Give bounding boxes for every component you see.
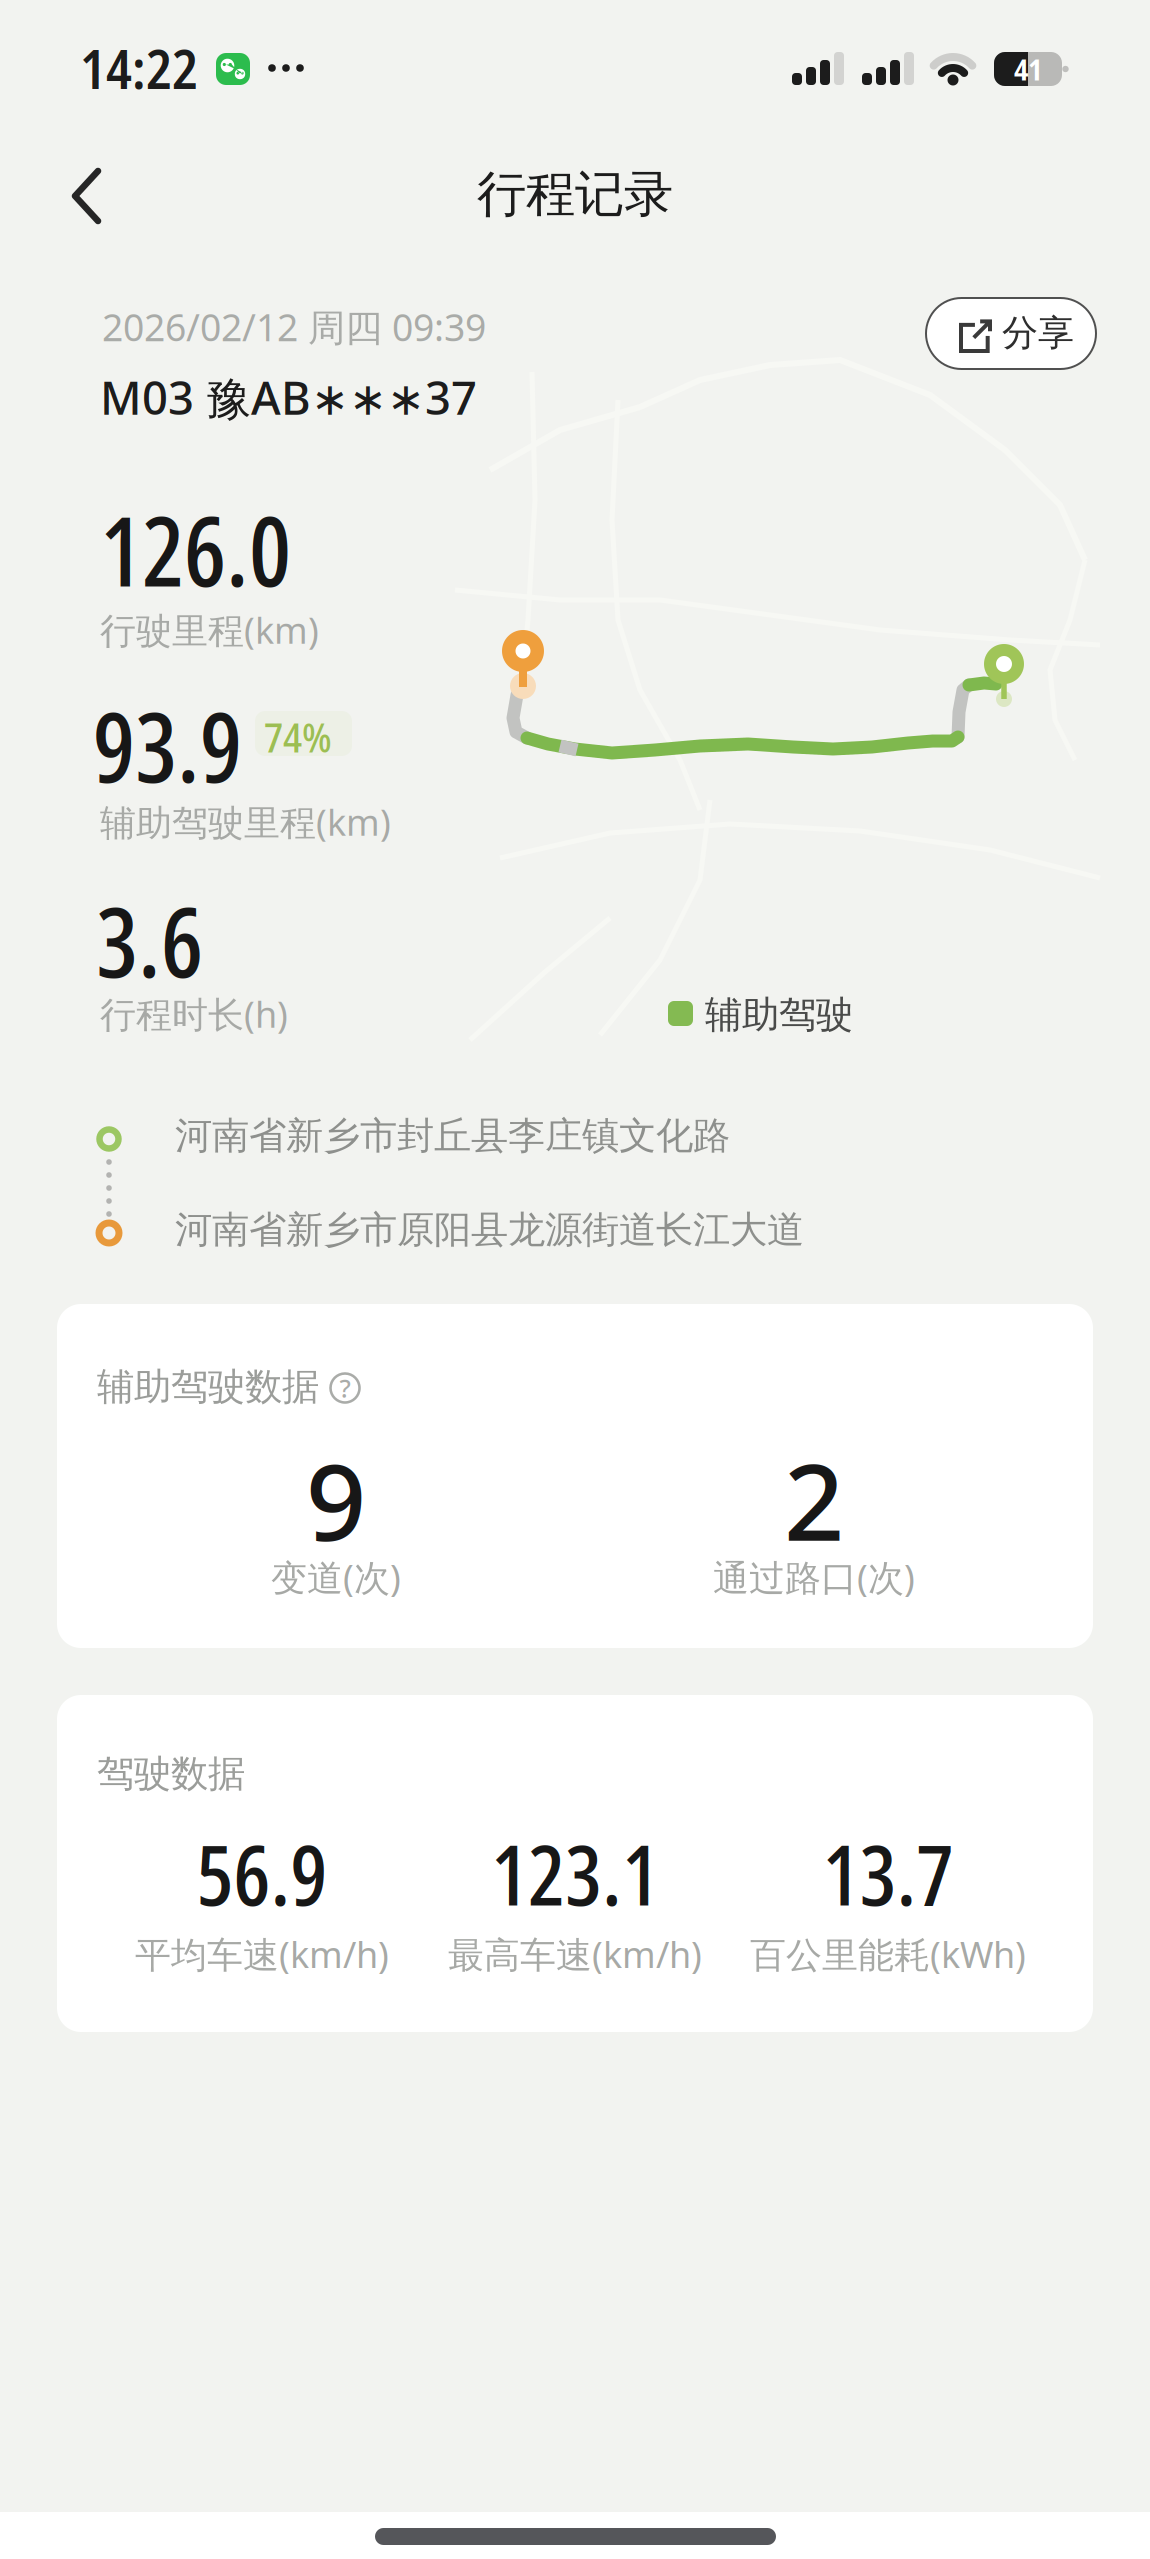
staticText: 行程记录: [477, 164, 673, 225]
staticText: 最高车速(km/h): [448, 1930, 702, 1978]
staticText: 辅助驾驶: [705, 992, 853, 1038]
staticText: 14:22: [80, 32, 198, 105]
staticText: 辅助驾驶里程(km): [100, 798, 391, 846]
staticText: 河南省新乡市封丘县李庄镇文化路: [175, 1113, 730, 1159]
staticText: 93.9: [93, 680, 242, 811]
staticText: M03 豫AB∗∗∗37: [100, 367, 477, 427]
staticText: 41: [1014, 49, 1042, 89]
staticText: 变道(次): [271, 1553, 401, 1601]
staticText: 辅助驾驶数据: [97, 1364, 319, 1410]
staticText: 3.6: [96, 875, 203, 1006]
staticText: ?: [339, 1371, 350, 1405]
button[interactable]: 分享: [925, 297, 1097, 370]
staticText: 2026/02/12 周四 09:39: [102, 302, 486, 352]
staticText: 通过路口(次): [713, 1553, 915, 1601]
staticText: 74%: [264, 710, 332, 764]
staticText: 2: [784, 1428, 844, 1572]
staticText: 百公里能耗(kWh): [750, 1930, 1026, 1978]
button[interactable]: 帮助: [329, 1372, 361, 1404]
staticText: 河南省新乡市原阳县龙源街道长江大道: [175, 1207, 804, 1253]
staticText: 驾驶数据: [97, 1751, 245, 1797]
button[interactable]: Back: [0, 0, 120, 100]
staticText: 分享: [1002, 311, 1074, 355]
staticText: 9: [306, 1428, 366, 1572]
staticText: 行驶里程(km): [100, 606, 319, 654]
staticText: 行程时长(h): [100, 990, 288, 1038]
staticText: 56.9: [196, 1816, 327, 1930]
staticText: 123.1: [491, 1816, 659, 1930]
staticText: 126.0: [100, 484, 291, 615]
staticText: 平均车速(km/h): [135, 1930, 389, 1978]
staticText: 13.7: [822, 1816, 953, 1930]
